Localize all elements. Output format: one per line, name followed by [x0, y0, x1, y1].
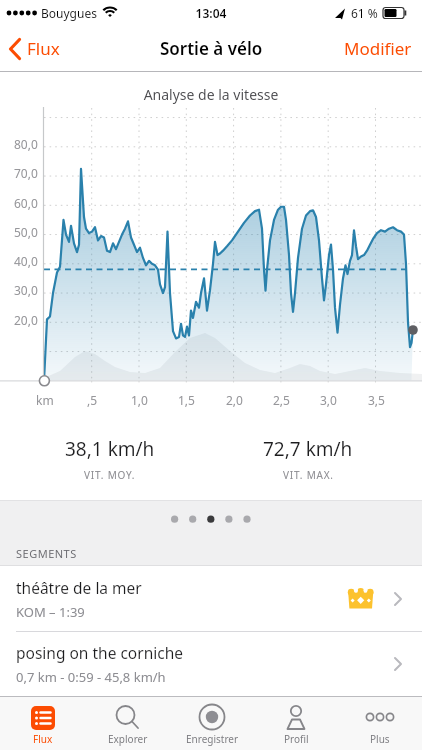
staticText: Bouygues — [41, 5, 97, 21]
staticText: théâtre de la mer — [16, 577, 142, 598]
staticText: 70,0 — [14, 165, 38, 181]
staticText: km — [36, 392, 54, 408]
staticText: VIT. MOY. — [84, 468, 136, 482]
staticText: Analyse de la vitesse — [0, 85, 422, 104]
staticText: 13:04 — [0, 5, 422, 21]
button[interactable]: posing on the corniche — [0, 632, 422, 696]
button[interactable]: Modifier — [344, 37, 422, 60]
staticText: 20,0 — [14, 312, 38, 328]
staticText: 38,1 km/h — [65, 436, 155, 462]
staticText: 1,5 — [178, 392, 195, 408]
staticText: 3,0 — [320, 392, 337, 408]
staticText: 1,0 — [131, 392, 148, 408]
button[interactable]: théâtre de la mer — [0, 566, 422, 631]
staticText: Sortie à vélo — [160, 37, 263, 60]
staticText: Flux — [27, 37, 60, 60]
staticText: Explorer — [108, 732, 148, 746]
button[interactable]: Profil — [254, 697, 338, 750]
staticText: 72,7 km/h — [263, 436, 353, 462]
staticText: 50,0 — [14, 224, 38, 240]
staticText: Profil — [284, 732, 309, 746]
staticText: Enregistrer — [186, 732, 239, 746]
button[interactable]: Explorer — [85, 697, 170, 750]
button[interactable]: Enregistrer — [170, 697, 254, 750]
staticText: 80,0 — [14, 136, 38, 152]
staticText: posing on the corniche — [16, 642, 183, 663]
staticText: 3,5 — [368, 392, 385, 408]
staticText: 30,0 — [14, 282, 38, 298]
staticText: KOM – 1:39 — [16, 603, 85, 621]
staticText: 2,0 — [226, 392, 243, 408]
button[interactable]: Plus — [338, 697, 422, 750]
staticText: Plus — [370, 732, 390, 746]
staticText: 40,0 — [14, 253, 38, 269]
staticText: 60,0 — [14, 195, 38, 211]
staticText: 61 % — [351, 5, 378, 21]
staticText: Flux — [33, 732, 53, 746]
staticText: ,5 — [87, 392, 98, 408]
staticText: 2,5 — [273, 392, 290, 408]
staticText: 0,7 km - 0:59 - 45,8 km/h — [16, 668, 166, 686]
staticText: Modifier — [344, 37, 412, 60]
staticText: VIT. MAX. — [283, 468, 334, 482]
button[interactable]: Flux — [0, 697, 85, 750]
staticText: SEGMENTS — [16, 546, 77, 561]
button[interactable]: Flux — [0, 37, 60, 60]
